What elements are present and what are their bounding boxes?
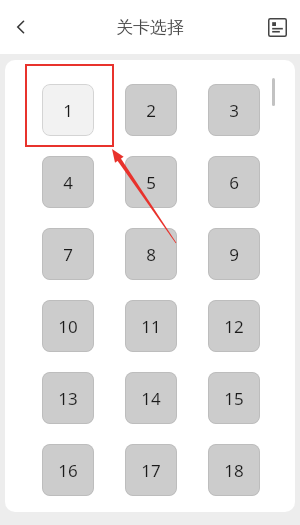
button[interactable]: 12 (208, 300, 260, 352)
staticText: 7 (63, 243, 73, 266)
staticText: 5 (146, 171, 156, 194)
staticText: 16 (58, 459, 78, 482)
staticText: 12 (224, 315, 244, 338)
button[interactable]: 5 (125, 156, 177, 208)
staticText: 14 (141, 387, 161, 410)
staticText: 关卡选择 (116, 17, 184, 38)
button[interactable]: 9 (208, 228, 260, 280)
button[interactable]: 4 (42, 156, 94, 208)
staticText: 2 (146, 99, 156, 122)
staticText: 1 (63, 99, 73, 122)
button[interactable]: 1 (42, 84, 94, 136)
button[interactable]: 2 (125, 84, 177, 136)
button[interactable]: Level list (262, 12, 292, 42)
button[interactable]: 13 (42, 372, 94, 424)
staticText: 9 (229, 243, 239, 266)
button[interactable]: 11 (125, 300, 177, 352)
staticText: 18 (224, 459, 244, 482)
staticText: 4 (63, 171, 73, 194)
button[interactable]: 3 (208, 84, 260, 136)
button[interactable]: 14 (125, 372, 177, 424)
button[interactable]: 17 (125, 444, 177, 496)
staticText: 13 (58, 387, 78, 410)
button[interactable]: 10 (42, 300, 94, 352)
staticText: 6 (229, 171, 239, 194)
staticText: 3 (229, 99, 239, 122)
button[interactable]: Back (6, 12, 36, 42)
button[interactable]: 15 (208, 372, 260, 424)
button[interactable]: 7 (42, 228, 94, 280)
button[interactable]: 8 (125, 228, 177, 280)
staticText: 8 (146, 243, 156, 266)
button[interactable]: 6 (208, 156, 260, 208)
button[interactable]: 16 (42, 444, 94, 496)
staticText: 11 (141, 315, 161, 338)
staticText: 10 (58, 315, 78, 338)
staticText: 15 (224, 387, 244, 410)
button[interactable]: 18 (208, 444, 260, 496)
staticText: 17 (141, 459, 161, 482)
